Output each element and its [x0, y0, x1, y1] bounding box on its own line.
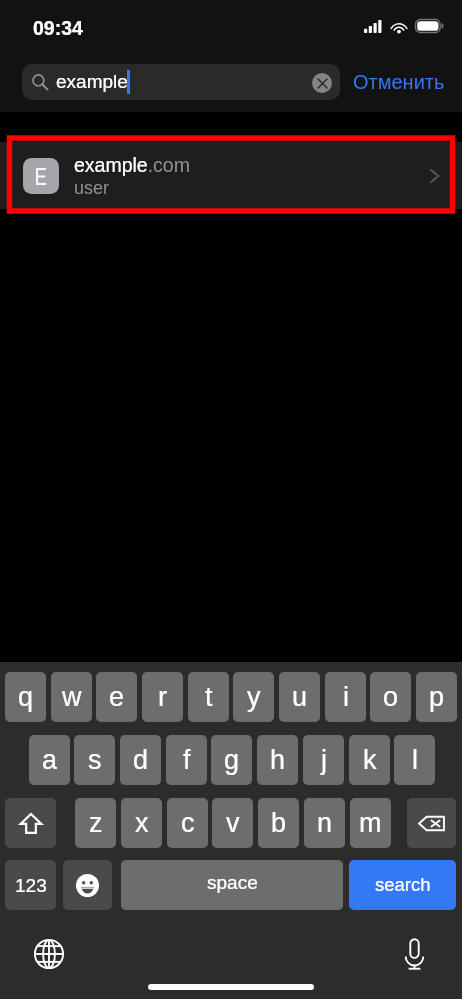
staticText: k: [363, 745, 377, 775]
button[interactable]: w: [51, 672, 92, 722]
button[interactable]: b: [258, 798, 299, 848]
button[interactable]: Shift: [5, 798, 56, 848]
button[interactable]: Dictate: [395, 935, 433, 973]
staticText: b: [271, 808, 287, 838]
button[interactable]: f: [166, 735, 207, 785]
button[interactable]: k: [349, 735, 390, 785]
button[interactable]: q: [5, 672, 46, 722]
staticText: 09:34: [33, 17, 83, 39]
button[interactable]: c: [167, 798, 208, 848]
button[interactable]: m: [350, 798, 391, 848]
button[interactable]: example: [22, 64, 340, 100]
button[interactable]: Emoji: [63, 860, 112, 910]
button[interactable]: t: [188, 672, 229, 722]
button[interactable]: search: [349, 860, 456, 910]
staticText: s: [88, 745, 102, 775]
staticText: j: [321, 745, 327, 775]
staticText: u: [292, 682, 308, 712]
button[interactable]: Backspace: [407, 798, 456, 848]
staticText: y: [247, 682, 261, 712]
staticText: h: [270, 745, 286, 775]
button[interactable]: n: [304, 798, 345, 848]
staticText: t: [205, 682, 213, 712]
button[interactable]: a: [29, 735, 70, 785]
staticText: i: [343, 682, 349, 712]
button[interactable]: Change keyboard: [30, 935, 68, 973]
staticText: a: [42, 745, 58, 775]
button[interactable]: g: [211, 735, 252, 785]
staticText: example.com: [74, 154, 190, 176]
staticText: w: [62, 682, 82, 712]
staticText: Отменить: [353, 71, 445, 93]
button[interactable]: Отменить: [348, 67, 450, 97]
staticText: search: [375, 874, 431, 895]
staticText: v: [226, 808, 240, 838]
button[interactable]: Clear text: [312, 73, 332, 93]
staticText: o: [383, 682, 399, 712]
staticText: c: [181, 808, 195, 838]
staticText: f: [183, 745, 191, 775]
staticText: space: [207, 872, 258, 893]
button[interactable]: p: [416, 672, 457, 722]
button[interactable]: space: [121, 860, 343, 910]
staticText: z: [89, 808, 103, 838]
button[interactable]: e: [96, 672, 137, 722]
staticText: example: [56, 71, 128, 92]
button[interactable]: z: [75, 798, 116, 848]
staticText: user: [74, 178, 110, 198]
button[interactable]: j: [303, 735, 344, 785]
staticText: g: [224, 745, 240, 775]
button[interactable]: u: [279, 672, 320, 722]
staticText: q: [18, 682, 34, 712]
button[interactable]: s: [74, 735, 115, 785]
button[interactable]: v: [212, 798, 253, 848]
button[interactable]: d: [120, 735, 161, 785]
staticText: m: [359, 808, 382, 838]
button[interactable]: 123: [5, 860, 56, 910]
staticText: e: [109, 682, 125, 712]
staticText: r: [158, 682, 167, 712]
button[interactable]: i: [325, 672, 366, 722]
button[interactable]: o: [370, 672, 411, 722]
staticText: p: [429, 682, 445, 712]
staticText: n: [317, 808, 333, 838]
button[interactable]: l: [394, 735, 435, 785]
button[interactable]: example.com: [0, 142, 462, 209]
button[interactable]: h: [257, 735, 298, 785]
staticText: x: [135, 808, 149, 838]
staticText: l: [412, 745, 418, 775]
staticText: 123: [15, 875, 47, 896]
staticText: d: [133, 745, 149, 775]
button[interactable]: x: [121, 798, 162, 848]
button[interactable]: y: [233, 672, 274, 722]
button[interactable]: r: [142, 672, 183, 722]
